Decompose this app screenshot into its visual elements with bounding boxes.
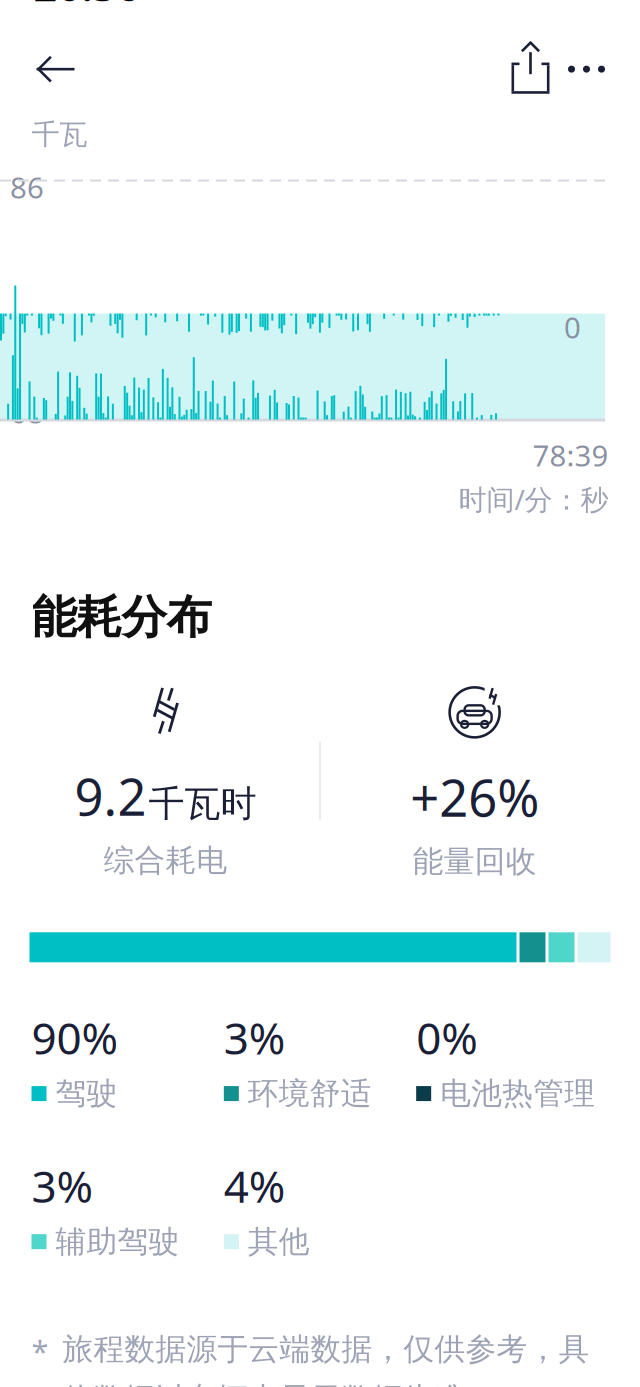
- staticText: 9.2: [74, 762, 146, 830]
- staticText: +26%: [410, 763, 539, 831]
- staticText: 0: [564, 307, 581, 346]
- staticText: 旅程数据源于云端数据，仅供参考，具体数据以车辆内显示数据为准。: [62, 1330, 589, 1387]
- staticText: *: [31, 1330, 48, 1371]
- staticText: -68: [1, 393, 44, 432]
- button[interactable]: Share: [502, 42, 558, 96]
- staticText: 综合耗电: [103, 842, 227, 879]
- staticText: 3%: [224, 1008, 286, 1067]
- staticText: 时间/分：秒: [458, 480, 608, 518]
- staticText: 电池热管理: [440, 1075, 595, 1112]
- button[interactable]: More options: [558, 43, 614, 95]
- staticText: 能耗分布: [31, 590, 211, 645]
- staticText: 千瓦: [31, 117, 87, 152]
- staticText: 3%: [31, 1156, 93, 1215]
- staticText: 驾驶: [55, 1075, 117, 1112]
- staticText: 86: [10, 167, 44, 206]
- staticText: 辅助驾驶: [55, 1223, 179, 1260]
- staticText: 环境舒适: [248, 1075, 372, 1112]
- staticText: 78:39: [532, 435, 608, 474]
- staticText: 4%: [224, 1156, 286, 1215]
- staticText: 0%: [416, 1008, 478, 1067]
- staticText: 其他: [248, 1223, 310, 1260]
- staticText: 20:36: [33, 0, 140, 13]
- button[interactable]: Back: [27, 43, 83, 95]
- staticText: 千瓦时: [148, 782, 256, 826]
- staticText: 能量回收: [413, 843, 537, 880]
- staticText: 90%: [31, 1008, 118, 1067]
